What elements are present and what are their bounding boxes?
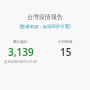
- staticText: 累計確診: [13, 40, 28, 45]
- button[interactable]: 更新時間 04/05 21:30: [4, 59, 44, 64]
- button[interactable]: 台灣疫情報告: [0, 13, 90, 21]
- staticText: 今日新增: [58, 40, 73, 45]
- staticText: 3,139: [8, 45, 34, 59]
- staticText: 15: [60, 45, 72, 59]
- staticText: (數據來源：衛福部疾管署): [0, 23, 90, 29]
- button[interactable]: New cases today 15: [43, 40, 88, 59]
- button[interactable]: Cumulative confirmed cases 3,139: [0, 40, 43, 59]
